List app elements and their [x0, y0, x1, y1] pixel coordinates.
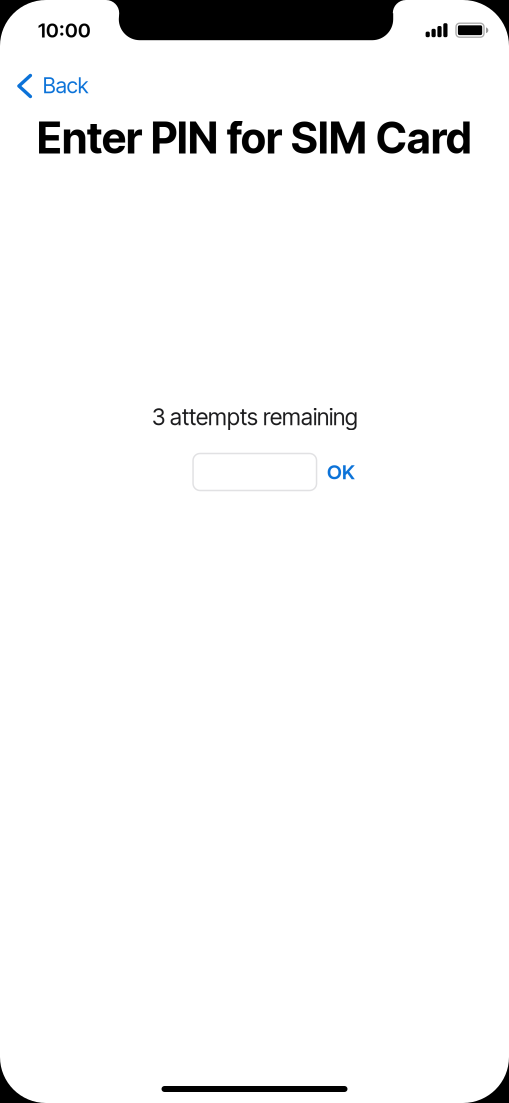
staticText: 10:00: [38, 18, 91, 42]
staticText: 3 attempts remaining: [152, 403, 358, 431]
button[interactable]: Back: [1, 66, 107, 106]
staticText: Enter PIN for SIM Card: [37, 112, 472, 164]
staticText: OK: [327, 460, 355, 484]
staticText: Back: [43, 73, 89, 98]
button[interactable]: OK: [319, 450, 363, 494]
button[interactable]: PIN: [193, 453, 317, 490]
